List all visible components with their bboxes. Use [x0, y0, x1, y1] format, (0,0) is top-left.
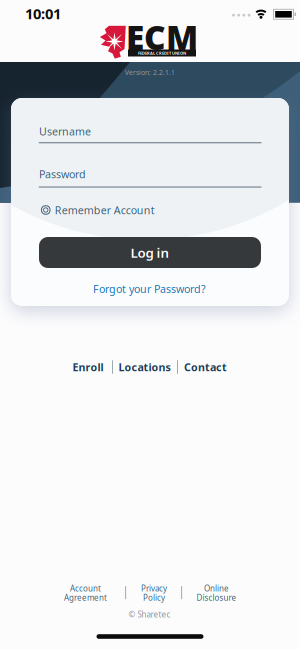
staticText: Contact — [184, 360, 227, 374]
staticText: FEDERAL CREDIT UNION — [138, 50, 186, 56]
button[interactable]: Enroll — [72, 360, 103, 374]
button[interactable]: Online — [196, 583, 236, 603]
staticText: Remember Account — [55, 203, 155, 217]
staticText: Privacy — [141, 583, 167, 594]
staticText: © Sharetec — [128, 609, 170, 620]
staticText: Username — [39, 124, 91, 138]
button[interactable]: Remember Account — [41, 203, 155, 217]
button[interactable]: Locations — [118, 360, 170, 374]
staticText: Locations — [118, 360, 170, 374]
button[interactable]: Forgot your Password? — [93, 282, 206, 296]
staticText: Password — [39, 167, 86, 181]
staticText: Policy — [143, 592, 165, 603]
staticText: ECM — [126, 15, 198, 59]
staticText: 10:01 — [25, 4, 61, 23]
staticText: Disclosure — [196, 592, 236, 603]
staticText: Forgot your Password? — [93, 282, 206, 296]
staticText: Agreement — [64, 592, 107, 603]
button[interactable]: Log in — [39, 237, 261, 268]
staticText: Online — [204, 583, 229, 594]
button[interactable]: Privacy — [141, 583, 167, 603]
button[interactable]: Account — [64, 583, 107, 603]
staticText: Log in — [130, 244, 169, 261]
button[interactable]: Contact — [184, 360, 227, 374]
staticText: Version: 2.2.1.1 — [125, 68, 175, 77]
staticText: Enroll — [72, 360, 103, 374]
staticText: Account — [70, 583, 101, 594]
